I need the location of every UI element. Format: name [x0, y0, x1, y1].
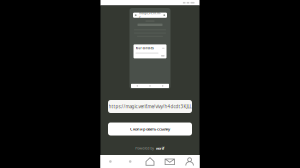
staticText: Your contacts: [135, 46, 153, 50]
staticText: magic.verif.me: [139, 11, 161, 19]
staticText: Скопировать ссылку: [130, 126, 170, 132]
staticText: https://magic.verif.me/vivy/h4dcdt3KJLL: [108, 103, 191, 109]
button[interactable]: Profile: [180, 155, 199, 168]
staticText: Powered by: [135, 146, 154, 151]
button[interactable]: Tab one: [100, 155, 120, 168]
button[interactable]: Tab two: [120, 155, 140, 168]
button[interactable]: Скопировать ссылку: [108, 122, 192, 135]
button[interactable]: Messages: [160, 155, 180, 168]
button[interactable]: Home: [140, 155, 160, 168]
staticText: verif: [156, 146, 165, 151]
